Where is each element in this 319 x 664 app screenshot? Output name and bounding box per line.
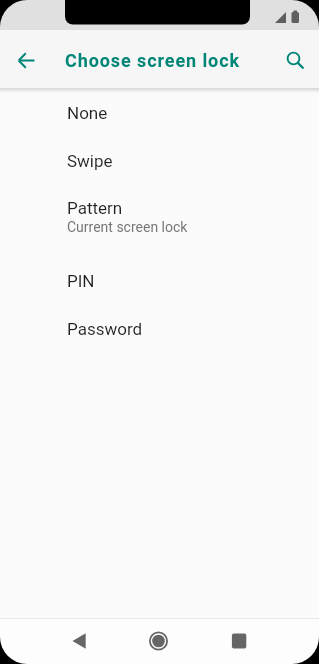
staticText: Pattern xyxy=(67,198,123,218)
staticText: PIN xyxy=(67,271,95,291)
staticText: Choose screen lock xyxy=(65,50,240,71)
staticText: Current screen lock xyxy=(67,219,188,235)
staticText: Password xyxy=(67,319,143,339)
staticText: None xyxy=(67,103,108,123)
staticText: Swipe xyxy=(67,151,113,171)
